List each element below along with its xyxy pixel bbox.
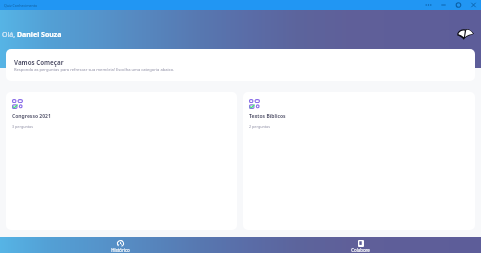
button[interactable]: Congresso 2021 <box>6 92 237 230</box>
button[interactable]: Minimize <box>436 0 451 10</box>
staticText: Vamos Começar <box>14 58 64 66</box>
button[interactable]: Maximize <box>451 0 466 10</box>
staticText: Daniel Souza <box>17 30 62 40</box>
button[interactable]: Textos Bíblicos <box>243 92 475 230</box>
button[interactable]: Histórico <box>0 237 240 253</box>
staticText: Responda as perguntas para refrescar sua… <box>14 67 175 73</box>
staticText: Olá, <box>2 30 17 40</box>
button[interactable]: Colabore <box>240 237 481 253</box>
staticText: 3 perguntas <box>12 124 33 129</box>
staticText: Quiz Conhecimento <box>4 3 38 8</box>
button[interactable]: More options <box>421 0 436 10</box>
button[interactable]: Open book <box>455 24 475 44</box>
staticText: 2 perguntas <box>249 124 270 129</box>
button[interactable]: Vamos Começar <box>6 49 475 81</box>
staticText: Congresso 2021 <box>12 113 51 120</box>
staticText: Colabore <box>351 247 370 253</box>
button[interactable]: Close <box>466 0 481 10</box>
staticText: Textos Bíblicos <box>249 113 286 120</box>
staticText: Histórico <box>111 247 130 253</box>
